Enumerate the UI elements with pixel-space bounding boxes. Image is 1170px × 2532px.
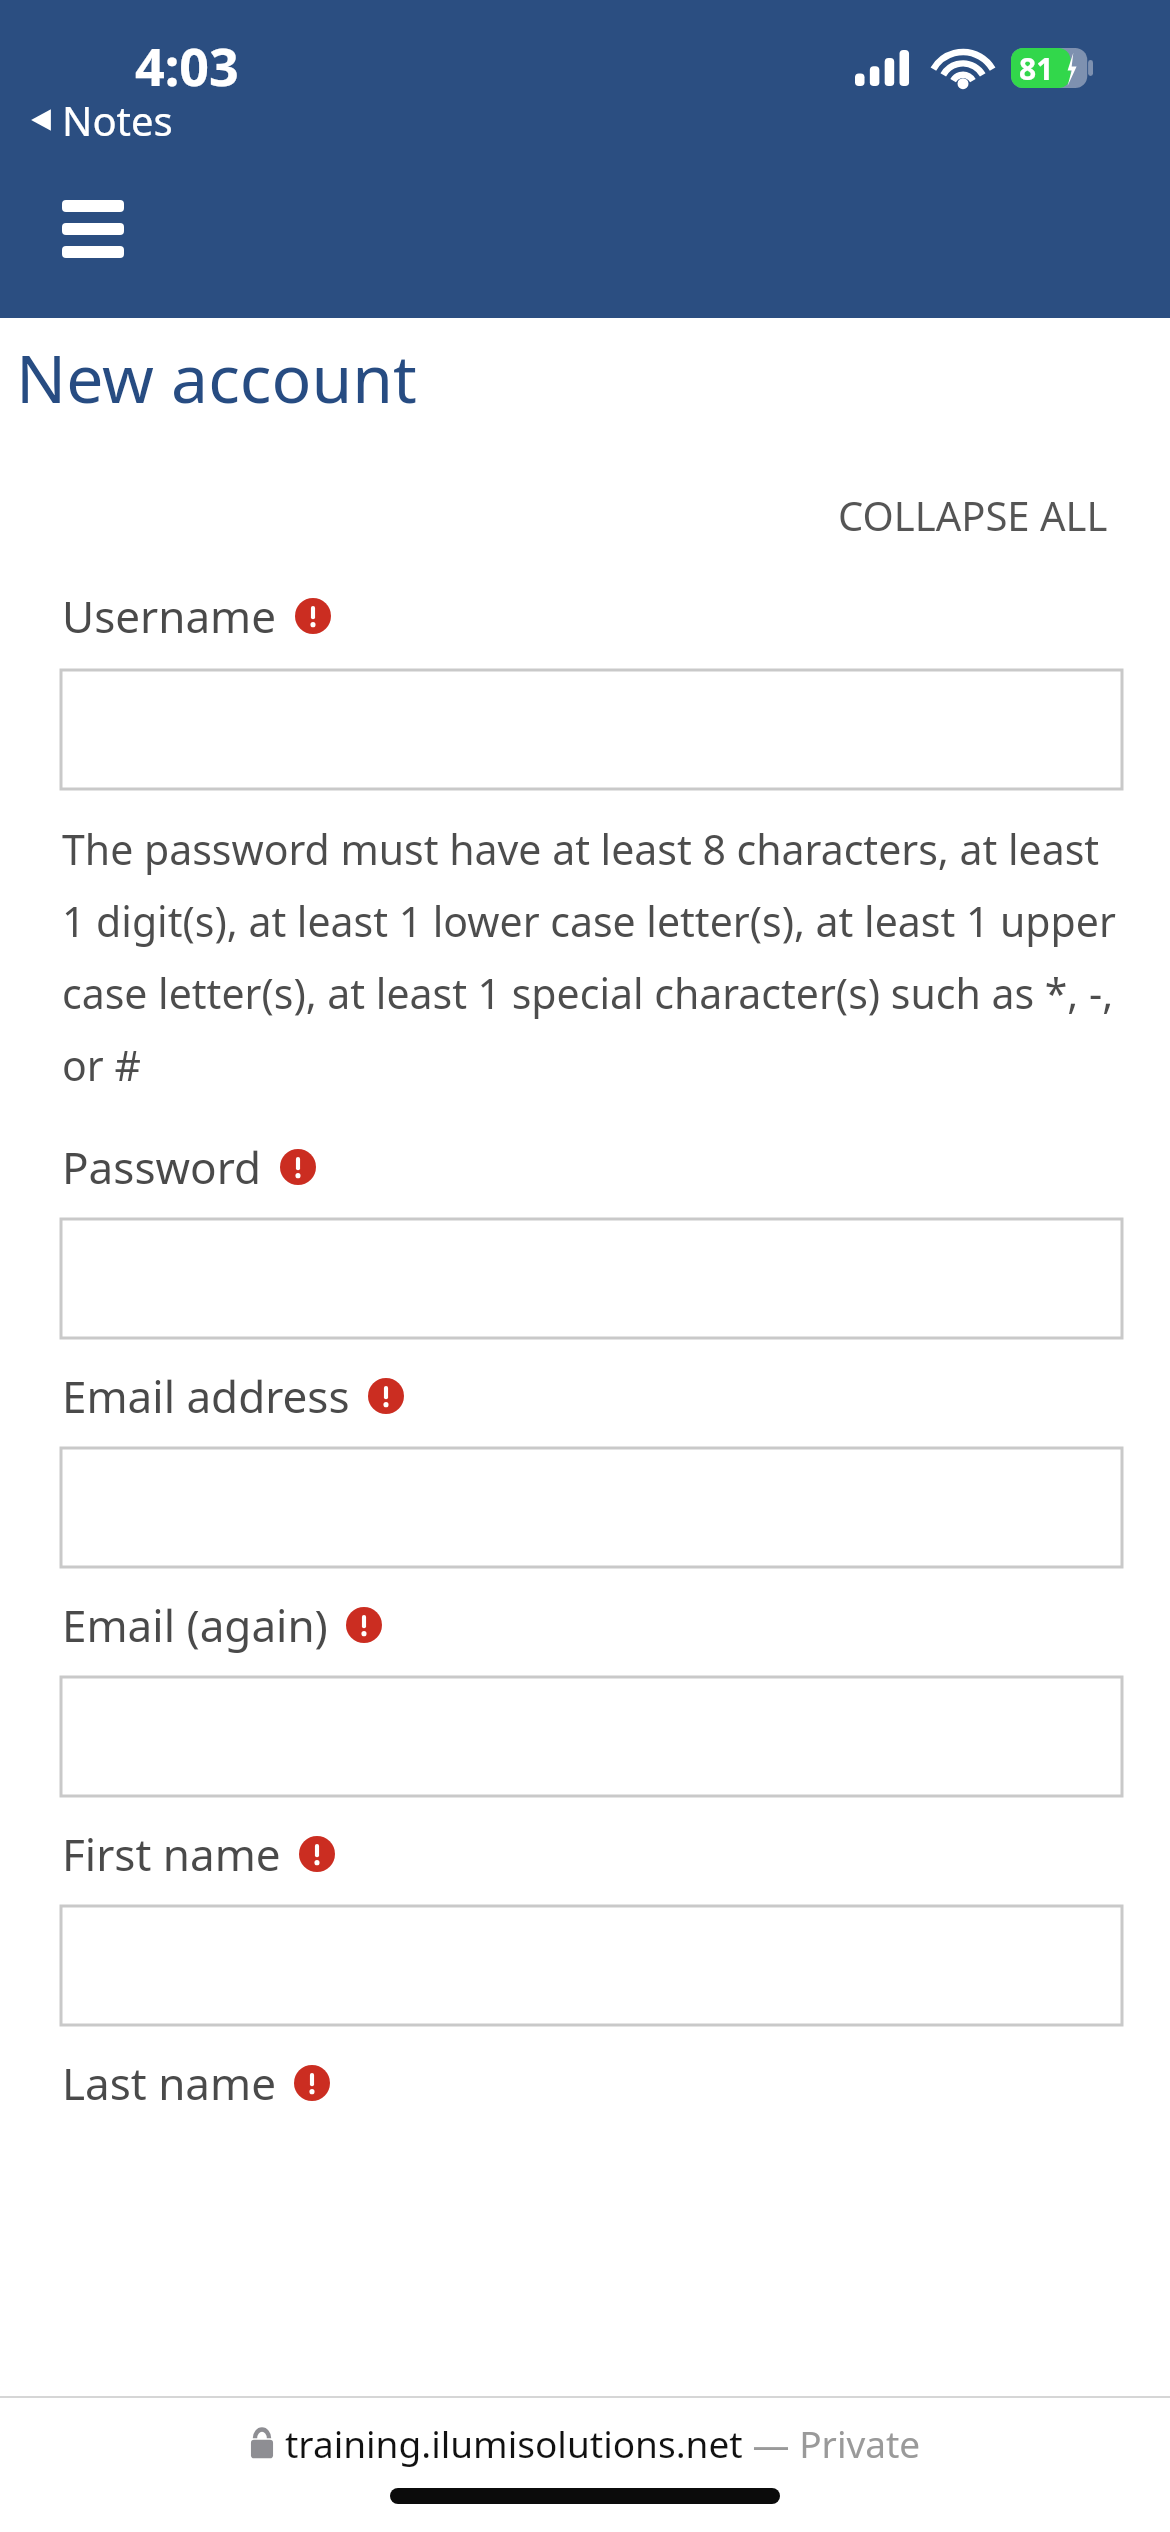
- button[interactable]: Password: [0, 1137, 1170, 1197]
- button[interactable]: [61, 1906, 1122, 2025]
- staticText: Password: [62, 1137, 262, 1197]
- button[interactable]: Username: [0, 586, 1170, 646]
- button[interactable]: COLLAPSE ALL: [776, 482, 1170, 548]
- button[interactable]: Email (again): [0, 1595, 1170, 1655]
- staticText: COLLAPSE ALL: [838, 488, 1108, 542]
- staticText: training.ilumisolutions.net: [285, 2418, 743, 2468]
- staticText: Email address: [62, 1366, 350, 1426]
- staticText: New account: [16, 332, 417, 422]
- staticText: Last name: [62, 2053, 276, 2113]
- button[interactable]: Menu: [62, 200, 124, 258]
- staticText: — Private: [743, 2418, 921, 2468]
- button[interactable]: [61, 1448, 1122, 1567]
- button[interactable]: [61, 1219, 1122, 1338]
- button[interactable]: [61, 670, 1122, 789]
- staticText: Username: [62, 586, 277, 646]
- staticText: The password must have at least 8 charac…: [62, 821, 1122, 1093]
- button[interactable]: Last name: [0, 2053, 1170, 2113]
- button[interactable]: First name: [0, 1824, 1170, 1884]
- staticText: 81: [1019, 48, 1054, 88]
- staticText: Email (again): [62, 1595, 328, 1655]
- staticText: 4:03: [135, 30, 239, 101]
- staticText: First name: [62, 1824, 281, 1884]
- button[interactable]: training.ilumisolutions.net: [249, 2418, 921, 2468]
- staticText: Notes: [62, 93, 173, 147]
- button[interactable]: [61, 1677, 1122, 1796]
- button[interactable]: Email address: [0, 1366, 1170, 1426]
- button[interactable]: Back to Notes: [30, 93, 173, 147]
